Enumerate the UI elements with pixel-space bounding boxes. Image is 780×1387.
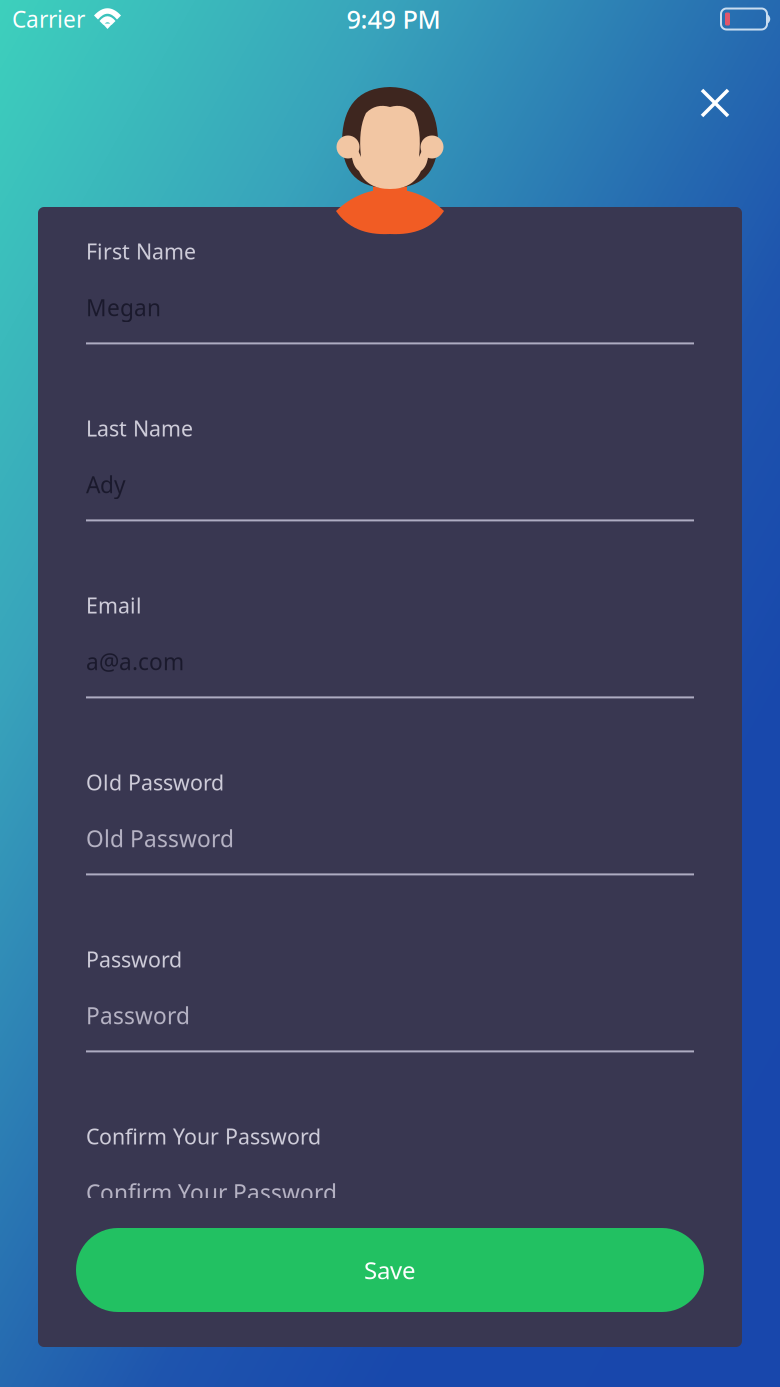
button[interactable]: Save <box>76 1228 704 1312</box>
button[interactable]: Close <box>686 74 744 132</box>
staticText: a@a.com <box>86 646 184 676</box>
staticText: Old Password <box>86 768 224 796</box>
button[interactable]: Password <box>86 945 694 1063</box>
button[interactable]: First Name <box>86 237 694 355</box>
staticText: First Name <box>86 237 196 265</box>
button[interactable]: Last Name <box>86 414 694 532</box>
staticText: 9:49 PM <box>346 2 440 36</box>
staticText: Megan <box>86 292 161 322</box>
staticText: Ady <box>86 469 126 499</box>
staticText: Confirm Your Password <box>86 1177 337 1207</box>
staticText: Save <box>364 1254 416 1286</box>
staticText: Carrier <box>12 4 85 34</box>
staticText: Last Name <box>86 414 193 442</box>
button[interactable]: Email <box>86 591 694 709</box>
staticText: Password <box>86 1000 190 1030</box>
staticText: Email <box>86 591 142 619</box>
button[interactable]: Confirm Your Password <box>86 1122 694 1240</box>
staticText: Confirm Your Password <box>86 1122 321 1150</box>
staticText: Old Password <box>86 823 234 853</box>
staticText: Password <box>86 945 182 973</box>
button[interactable]: Old Password <box>86 768 694 886</box>
